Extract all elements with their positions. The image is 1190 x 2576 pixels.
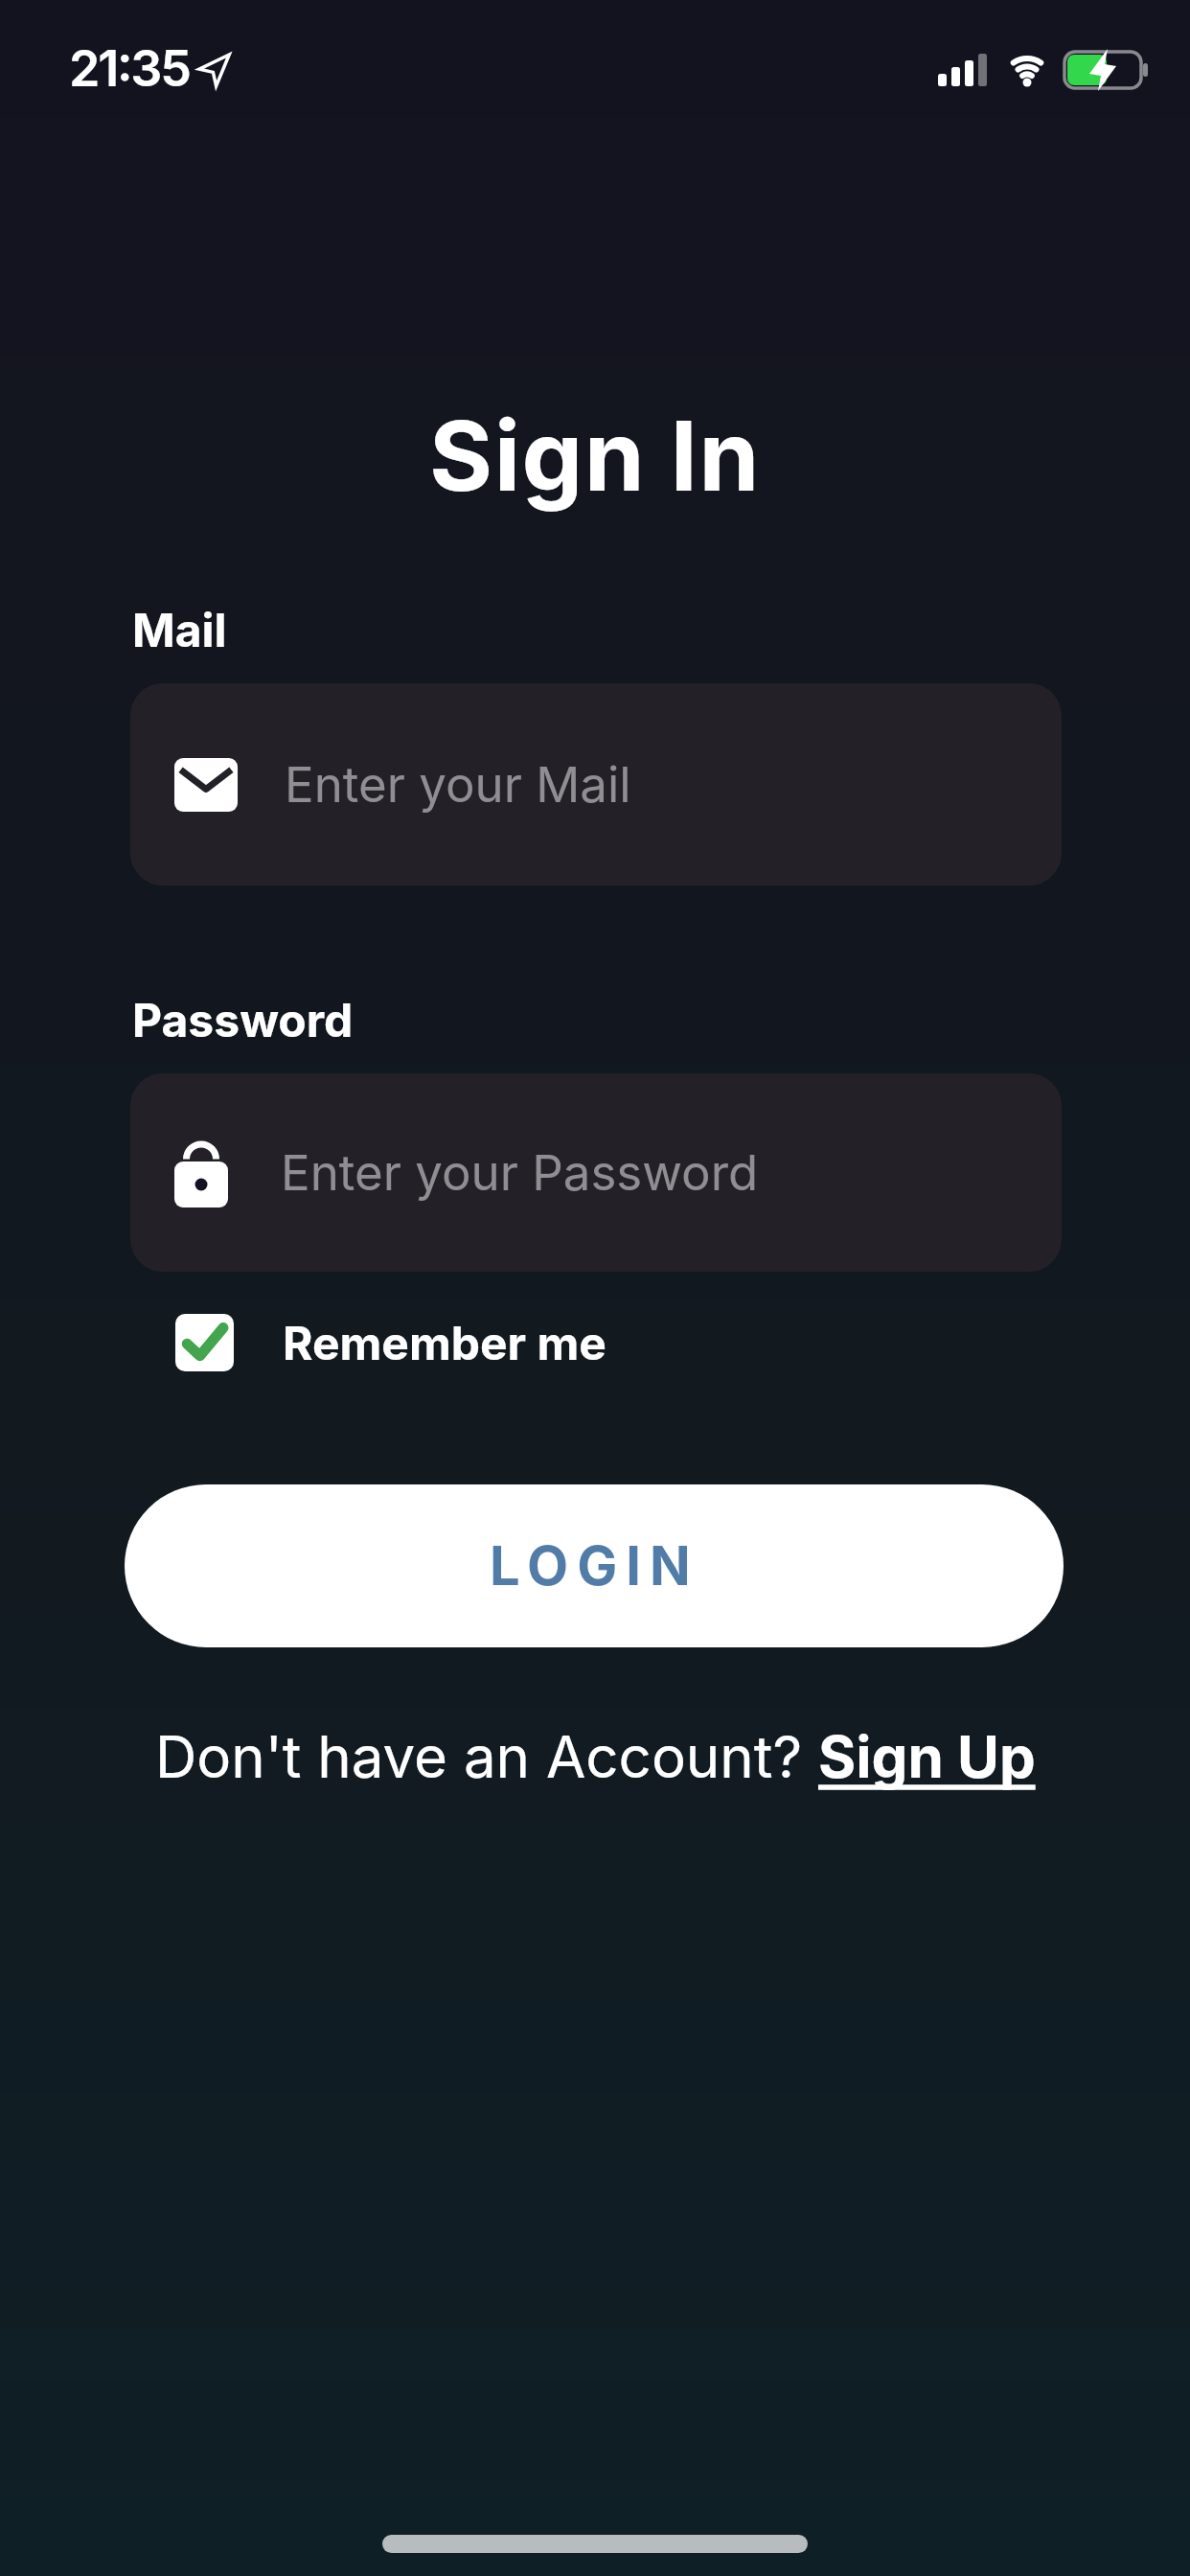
staticText: Password	[132, 992, 354, 1047]
staticText: Enter your Mail	[285, 755, 631, 815]
staticText: Remember me	[283, 1315, 606, 1370]
button[interactable]: Enter your Mail	[130, 683, 1062, 885]
staticText: Mail	[132, 602, 227, 657]
button[interactable]: Enter your Password	[130, 1073, 1062, 1272]
button[interactable]: Remember me	[175, 1314, 606, 1371]
staticText: LOGIN	[490, 1533, 699, 1598]
staticText: 21:35	[69, 38, 190, 99]
button[interactable]: Don't have an Account? Sign Up	[155, 1722, 1036, 1792]
staticText: Sign In	[429, 397, 761, 514]
staticText: Enter your Password	[281, 1143, 759, 1203]
button[interactable]: LOGIN	[125, 1484, 1064, 1647]
